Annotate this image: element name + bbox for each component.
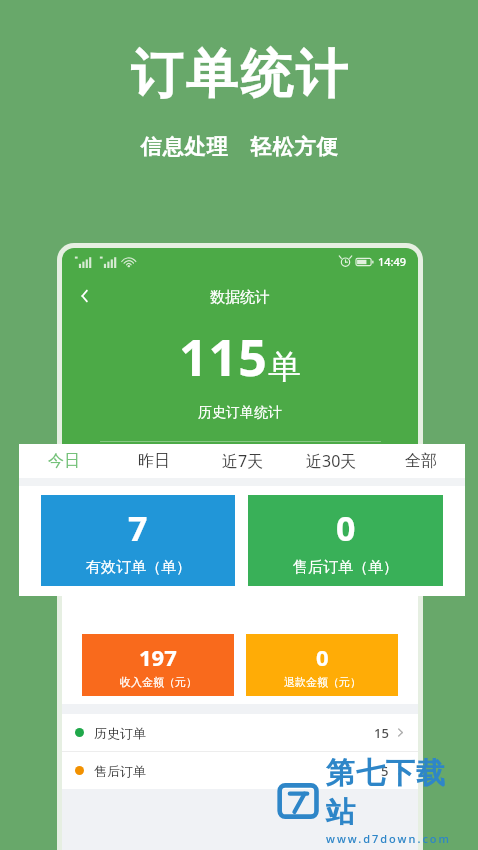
staticText: 有效订单（单） <box>86 558 191 577</box>
staticText: 昨日 <box>138 451 170 471</box>
staticText: 收入金额（元） <box>120 675 197 689</box>
button[interactable]: 197 <box>82 634 234 696</box>
staticText: 5 <box>381 762 389 780</box>
button[interactable]: Back <box>68 279 102 313</box>
staticText: 全部 <box>405 451 437 471</box>
staticText: 0 <box>336 505 356 551</box>
button[interactable]: 全部 <box>376 444 465 478</box>
staticText: 售后订单 <box>94 763 146 779</box>
button[interactable]: 0 <box>246 634 398 696</box>
staticText: 订单统计 <box>129 42 349 108</box>
staticText: 115 <box>179 323 268 391</box>
button[interactable]: 7 <box>41 495 235 586</box>
staticText: 数据统计 <box>210 288 270 307</box>
button[interactable]: 0 <box>248 495 443 586</box>
button[interactable]: 近30天 <box>287 444 376 478</box>
staticText: 7 <box>128 505 148 551</box>
staticText: 信息处理 轻松方便 <box>140 132 338 161</box>
staticText: 第七下载站 <box>326 755 474 831</box>
staticText: 197 <box>139 642 177 672</box>
staticText: 数据统计截止到：2020/9/19 下午2:49:14 <box>120 455 360 473</box>
staticText: 历史订单统计 <box>198 404 282 422</box>
staticText: 0 <box>316 642 329 672</box>
staticText: 单 <box>268 346 301 388</box>
staticText: 15 <box>374 724 389 742</box>
staticText: www.d7down.com <box>326 831 451 846</box>
staticText: 近7天 <box>222 450 264 472</box>
staticText: 14:49 <box>378 254 407 269</box>
staticText: 退款金额（元） <box>284 675 361 689</box>
staticText: 历史订单 <box>94 725 146 741</box>
button[interactable]: 昨日 <box>109 444 198 478</box>
button[interactable]: 近7天 <box>198 444 287 478</box>
button[interactable]: 历史订单 <box>62 714 418 751</box>
button[interactable]: 售后订单 <box>62 752 418 789</box>
staticText: 今日 <box>48 451 80 471</box>
staticText: 近30天 <box>306 450 357 472</box>
button[interactable]: 今日 <box>19 444 109 478</box>
staticText: 售后订单（单） <box>293 558 398 577</box>
